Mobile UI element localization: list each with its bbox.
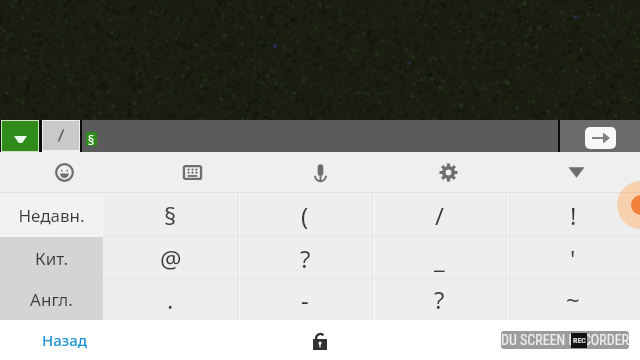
staticText: @: [160, 242, 182, 275]
staticText: REC: [573, 336, 586, 345]
staticText: Англ.: [30, 288, 73, 311]
button[interactable]: §: [82, 120, 558, 152]
button[interactable]: ?: [238, 237, 372, 279]
staticText: Недавн.: [18, 204, 85, 227]
button[interactable]: .: [103, 279, 238, 320]
button[interactable]: Назад: [42, 330, 87, 350]
button[interactable]: Keyboard layout: [128, 152, 256, 193]
staticText: -: [301, 283, 309, 316]
staticText: §: [164, 199, 177, 232]
staticText: .: [167, 283, 174, 316]
button[interactable]: Англ.: [0, 279, 103, 320]
button[interactable]: !: [506, 193, 640, 237]
button[interactable]: §: [103, 193, 238, 237]
button[interactable]: (: [238, 193, 372, 237]
button[interactable]: Emoji: [0, 152, 128, 193]
button[interactable]: ': [506, 237, 640, 279]
button[interactable]: Кит.: [0, 237, 103, 279]
staticText: ?: [434, 283, 445, 316]
staticText: _: [434, 242, 445, 275]
staticText: DU SCREEN RECORDER: [501, 332, 629, 348]
button[interactable]: Недавн.: [0, 193, 103, 237]
button[interactable]: Unlock: [303, 323, 337, 357]
button[interactable]: Expand candidates: [2, 121, 38, 151]
button[interactable]: -: [238, 279, 372, 320]
button[interactable]: ?: [372, 279, 506, 320]
staticText: ': [570, 242, 576, 275]
staticText: /: [435, 199, 444, 232]
button[interactable]: _: [372, 237, 506, 279]
staticText: §: [88, 132, 95, 146]
staticText: !: [570, 199, 577, 232]
staticText: Назад: [42, 330, 87, 350]
staticText: ?: [300, 242, 311, 275]
staticText: ~: [566, 283, 580, 316]
button[interactable]: Slash key: [43, 121, 79, 150]
button[interactable]: Hide keyboard: [512, 152, 640, 193]
button[interactable]: /: [372, 193, 506, 237]
button[interactable]: Screen recorder: [617, 181, 640, 229]
button[interactable]: Voice input: [256, 152, 384, 193]
button[interactable]: Enter: [585, 127, 616, 149]
staticText: (: [301, 199, 309, 232]
button[interactable]: Settings: [384, 152, 512, 193]
staticText: Кит.: [35, 247, 68, 270]
button[interactable]: @: [103, 237, 238, 279]
button[interactable]: ~: [506, 279, 640, 320]
